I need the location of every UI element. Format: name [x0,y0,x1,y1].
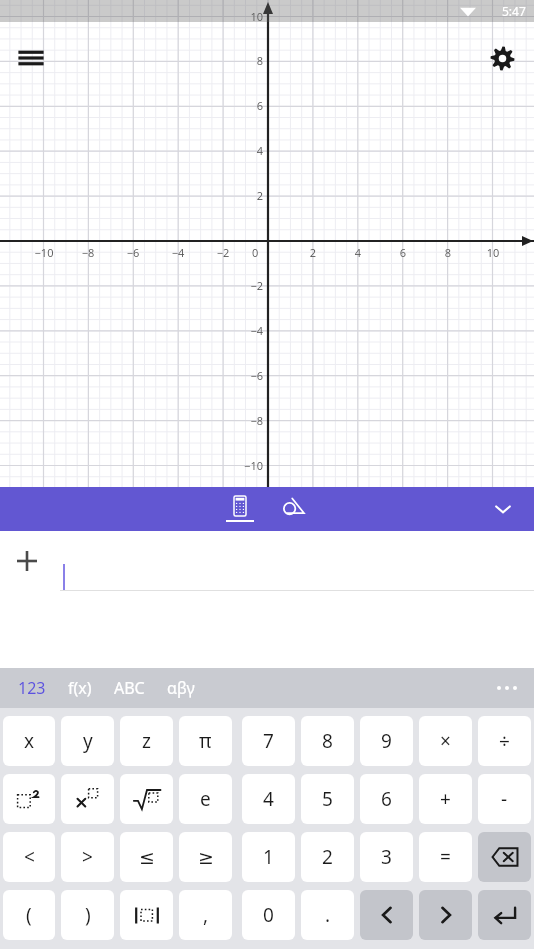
button[interactable]: × [419,716,472,766]
staticText: ≥ [198,846,214,868]
button[interactable]: ABC [110,673,149,703]
staticText: 10 [480,245,506,260]
staticText: −4 [165,245,191,260]
button[interactable]: π [179,716,232,766]
staticText: 10 [235,9,263,24]
button[interactable]: 123 [14,673,50,703]
staticText: 5:47 [502,3,526,19]
button[interactable]: 0 [242,890,295,940]
staticText: 2 [235,188,263,203]
staticText: x [24,728,35,754]
staticText: 9 [381,728,392,754]
button[interactable]: 2 [301,832,354,882]
button[interactable]: f(x) [64,673,96,703]
staticText: 6 [235,98,263,113]
staticText: 2 [322,844,333,870]
button[interactable]: 3 [360,832,413,882]
button[interactable]: 8 [301,716,354,766]
button[interactable]: 1 [242,832,295,882]
staticText: 0 [252,245,259,260]
button[interactable]: x [3,716,55,766]
staticText: −2 [210,245,236,260]
staticText: , [203,902,209,928]
staticText: 6 [381,786,392,812]
staticText: 8 [235,53,263,68]
button[interactable]: Backspace [478,832,531,882]
staticText: ABC [114,677,145,699]
staticText: −10 [235,458,263,473]
button[interactable]: > [61,832,114,882]
staticText: −8 [235,413,263,428]
button[interactable]: 9 [360,716,413,766]
button[interactable]: More options [490,671,524,705]
staticText: 123 [18,677,46,699]
button[interactable]: Geometry tools [271,487,317,531]
staticText: −10 [31,245,57,260]
button[interactable]: Add input [9,543,45,579]
button[interactable]: Calculator [217,487,263,531]
staticText: 4 [263,786,274,812]
button[interactable]: Absolute value [120,890,173,940]
button[interactable]: . [301,890,354,940]
staticText: −6 [120,245,146,260]
staticText: 4 [235,143,263,158]
staticText: - [501,786,508,812]
button[interactable]: e [179,774,232,824]
button[interactable]: Settings [483,39,521,77]
button[interactable]: Power [61,774,114,824]
staticText: 1 [263,844,274,870]
button[interactable]: 6 [360,774,413,824]
staticText: z [142,728,151,754]
button[interactable]: + [419,774,472,824]
button[interactable]: 7 [242,716,295,766]
staticText: −4 [235,323,263,338]
button[interactable]: ≥ [179,832,232,882]
staticText: −6 [235,368,263,383]
button[interactable]: 5 [301,774,354,824]
staticText: 7 [263,728,274,754]
button[interactable]: Square [3,774,55,824]
staticText: 0 [263,902,274,928]
staticText: −2 [235,278,263,293]
button[interactable]: y [61,716,114,766]
button[interactable]: ) [61,890,114,940]
button[interactable] [60,548,534,574]
staticText: αβγ [167,677,195,699]
staticText: . [325,902,331,928]
button[interactable]: ÷ [478,716,531,766]
staticText: y [83,728,93,754]
staticText: e [200,786,211,812]
staticText: + [440,786,451,812]
button[interactable]: αβγ [163,673,199,703]
staticText: 2 [300,245,326,260]
staticText: ≤ [139,846,155,868]
button[interactable]: Left [360,890,413,940]
button[interactable]: Collapse [486,492,520,526]
staticText: ) [85,902,91,928]
staticText: = [440,844,451,870]
staticText: π [199,728,212,754]
staticText: 4 [345,245,371,260]
button[interactable]: < [3,832,55,882]
staticText: 3 [381,844,392,870]
staticText: < [24,844,35,870]
button[interactable]: Enter [478,890,531,940]
staticText: 5 [322,786,333,812]
button[interactable]: ( [3,890,55,940]
button[interactable]: 4 [242,774,295,824]
button[interactable]: - [478,774,531,824]
staticText: 8 [435,245,461,260]
button[interactable]: Menu [12,39,50,77]
button[interactable]: ≤ [120,832,173,882]
staticText: 6 [390,245,416,260]
staticText: f(x) [68,677,92,699]
button[interactable]: = [419,832,472,882]
button[interactable]: , [179,890,232,940]
staticText: ÷ [499,728,510,754]
button[interactable]: Square root [120,774,173,824]
staticText: ( [26,902,32,928]
button[interactable]: z [120,716,173,766]
staticText: × [440,728,451,754]
button[interactable]: Right [419,890,472,940]
staticText: > [82,844,93,870]
